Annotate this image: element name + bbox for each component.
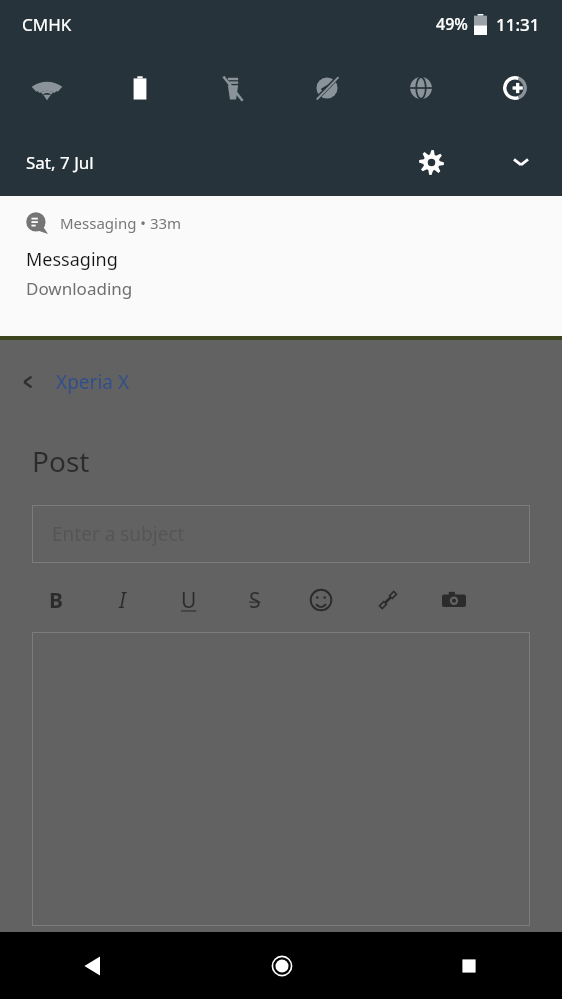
button[interactable]: Italic bbox=[102, 580, 142, 620]
button[interactable]: Messaging • 33m bbox=[0, 196, 562, 336]
button[interactable]: Camera bbox=[434, 580, 474, 620]
staticText: CMHK bbox=[22, 13, 72, 36]
staticText: Post bbox=[32, 442, 90, 480]
staticText: Messaging • 33m bbox=[60, 213, 182, 233]
button[interactable]: Insert emoji bbox=[301, 580, 341, 620]
button[interactable]: Back bbox=[0, 932, 188, 999]
button[interactable]: Flashlight bbox=[186, 48, 280, 128]
staticText: 49% bbox=[436, 13, 468, 35]
staticText: Enter a subject bbox=[52, 521, 185, 547]
button[interactable]: Wi-Fi bbox=[0, 48, 93, 128]
staticText: I bbox=[119, 586, 126, 615]
button[interactable]: Strikethrough bbox=[235, 580, 275, 620]
button[interactable]: Xperia X bbox=[12, 366, 130, 398]
staticText: Downloading bbox=[26, 277, 133, 300]
button[interactable]: Auto rotate bbox=[280, 48, 374, 128]
button[interactable]: Home bbox=[188, 932, 375, 999]
button[interactable]: Bold bbox=[36, 580, 76, 620]
staticText: Messaging bbox=[26, 247, 118, 272]
button[interactable]: Underline bbox=[169, 580, 209, 620]
staticText: Sat, 7 Jul bbox=[26, 151, 94, 174]
staticText: B bbox=[49, 586, 63, 615]
button[interactable]: Expand quick settings bbox=[498, 139, 544, 185]
button[interactable]: Insert link bbox=[368, 580, 408, 620]
button[interactable]: Enter a subject bbox=[32, 505, 530, 563]
button[interactable]: Settings bbox=[408, 139, 454, 185]
staticText: 11:31 bbox=[496, 13, 540, 36]
button[interactable]: Battery saver bbox=[93, 48, 186, 128]
staticText: U bbox=[181, 586, 197, 615]
staticText: Xperia X bbox=[56, 369, 130, 395]
button[interactable]: Mobile network bbox=[374, 48, 468, 128]
button[interactable]: Recent apps bbox=[375, 932, 562, 999]
button[interactable]: Add user bbox=[468, 48, 562, 128]
staticText: S bbox=[249, 586, 261, 615]
